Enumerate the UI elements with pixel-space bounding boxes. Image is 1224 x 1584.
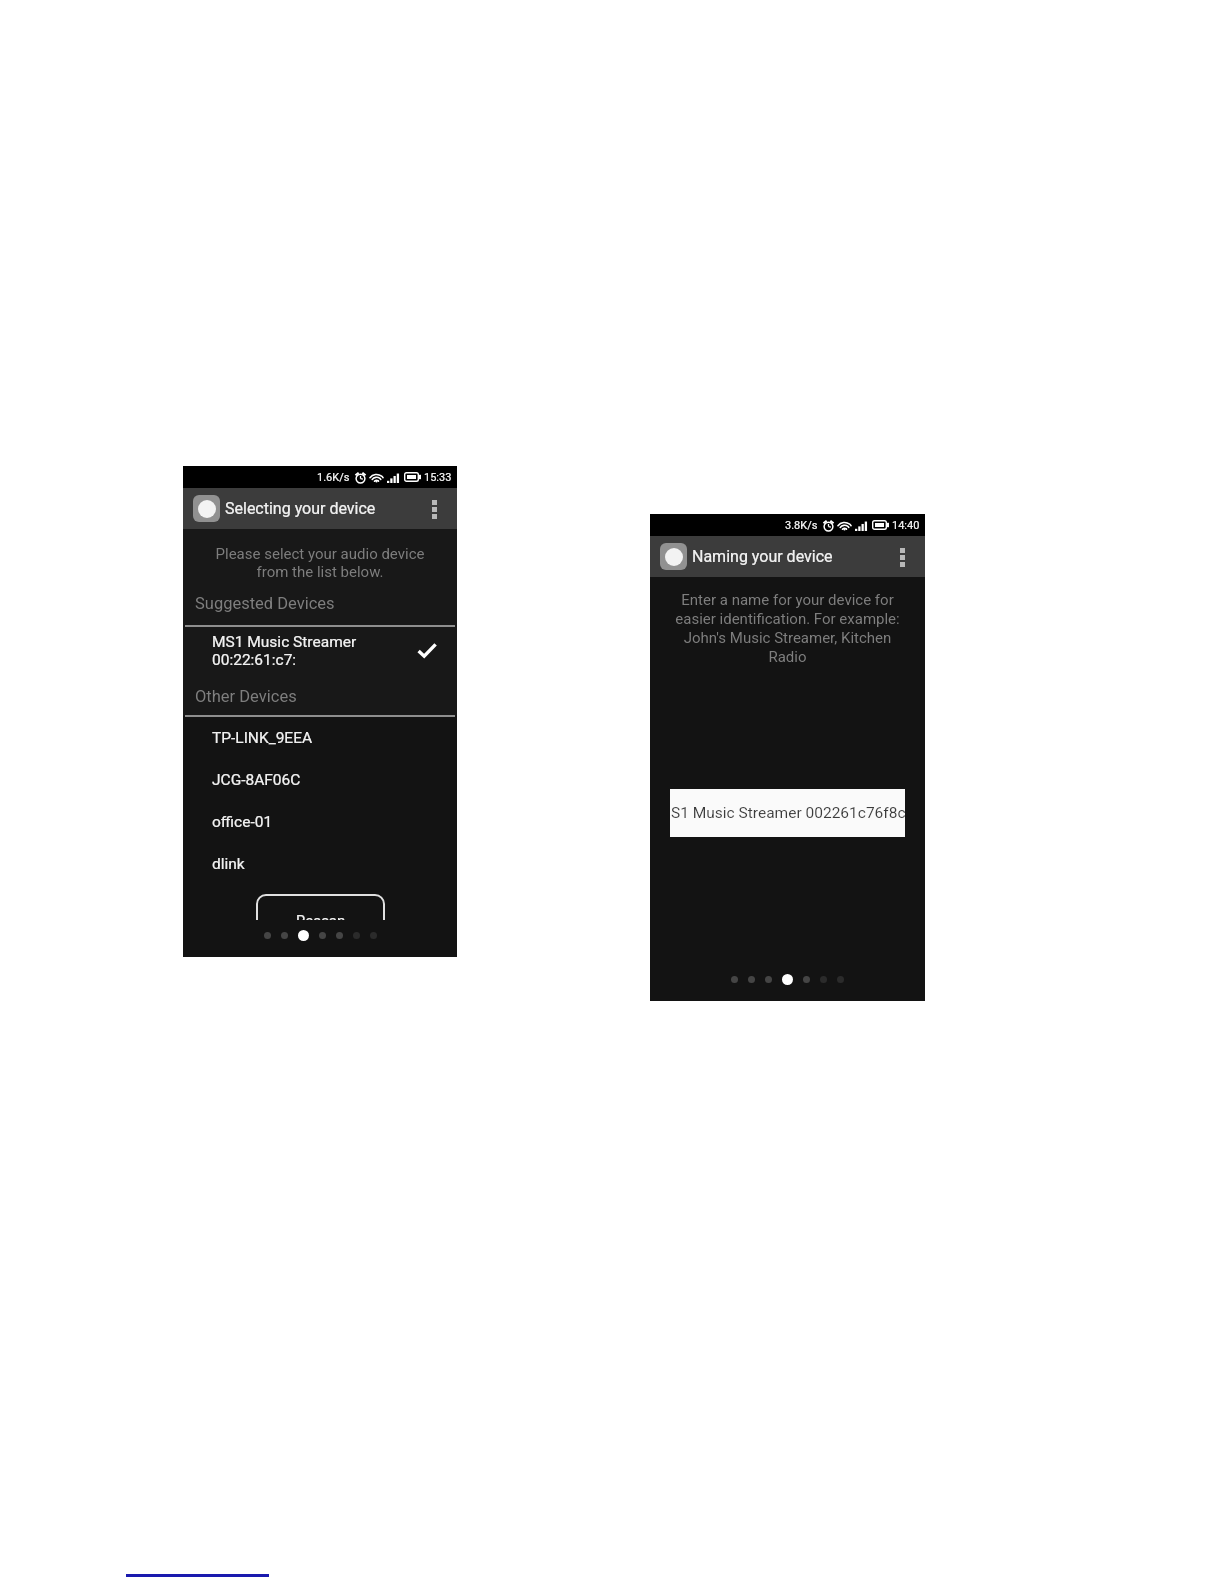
- staticText: Suggested Devices: [195, 594, 335, 613]
- staticText: 14:40: [892, 519, 920, 532]
- button[interactable]: Page 7: [837, 976, 844, 983]
- staticText: 15:33: [424, 471, 452, 484]
- staticText: 1.6K/s: [317, 471, 350, 484]
- staticText: Other Devices: [195, 687, 297, 706]
- button[interactable]: App icon, navigate up: [660, 536, 915, 577]
- button[interactable]: Page 3: [765, 976, 772, 983]
- button[interactable]: Page 6: [820, 976, 827, 983]
- button[interactable]: TP-LINK_9EEA: [212, 717, 457, 759]
- button[interactable]: Rescan: [256, 894, 385, 920]
- button[interactable]: dlink: [212, 843, 457, 885]
- staticText: office-01: [212, 813, 273, 831]
- button[interactable]: App icon, navigate up: [193, 488, 447, 529]
- staticText: S1 Music Streamer 002261c76f8c: [671, 804, 905, 822]
- staticText: MS1 Music Streamer: [212, 633, 357, 651]
- staticText: Rescan: [296, 912, 346, 920]
- button[interactable]: Page 7: [370, 932, 377, 939]
- button[interactable]: Page 1: [264, 932, 271, 939]
- button[interactable]: MS1 Music Streamer: [212, 627, 437, 675]
- staticText: Naming your device: [692, 547, 833, 566]
- button[interactable]: S1 Music Streamer 002261c76f8c: [670, 789, 905, 837]
- button[interactable]: Page 2: [748, 976, 755, 983]
- button[interactable]: App icon, navigate up: [193, 495, 220, 522]
- staticText: 3.8K/s: [785, 519, 818, 532]
- button[interactable]: Page 3: [298, 930, 309, 941]
- staticText: 00:22:61:c7:: [212, 651, 297, 669]
- button[interactable]: More options: [889, 544, 915, 570]
- button[interactable]: office-01: [212, 801, 457, 843]
- staticText: Enter a name for your device for easier …: [672, 591, 903, 665]
- staticText: Please select your audio device from the…: [183, 545, 457, 581]
- button[interactable]: Page 5: [803, 976, 810, 983]
- staticText: JCG-8AF06C: [212, 771, 301, 789]
- button[interactable]: Page 6: [353, 932, 360, 939]
- staticText: TP-LINK_9EEA: [212, 729, 313, 747]
- button[interactable]: Page 1: [731, 976, 738, 983]
- button[interactable]: Page 4: [319, 932, 326, 939]
- button[interactable]: Page 4: [782, 974, 793, 985]
- button[interactable]: App icon, navigate up: [660, 543, 687, 570]
- staticText: Selecting your device: [225, 499, 376, 518]
- button[interactable]: JCG-8AF06C: [212, 759, 457, 801]
- button[interactable]: More options: [421, 496, 447, 522]
- staticText: dlink: [212, 855, 245, 873]
- button[interactable]: Page 2: [281, 932, 288, 939]
- button[interactable]: Page 5: [336, 932, 343, 939]
